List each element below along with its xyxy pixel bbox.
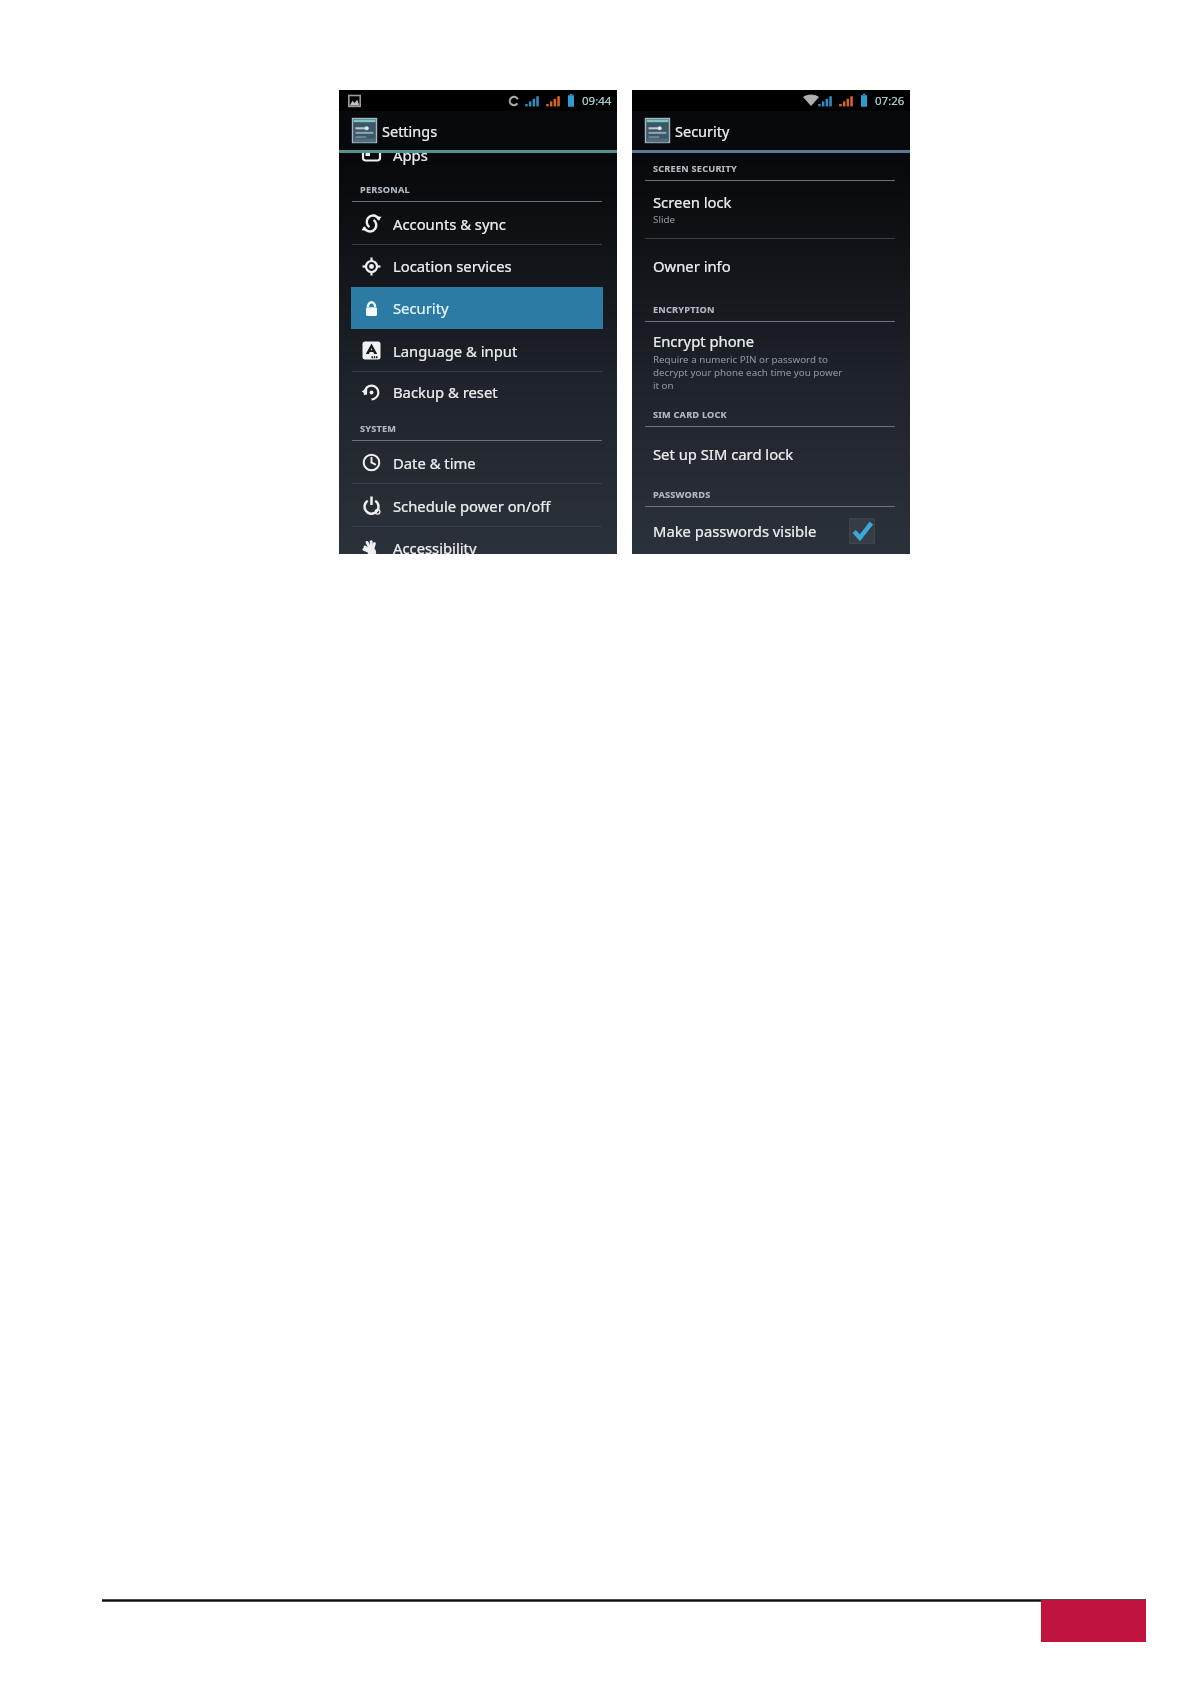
button[interactable]: Make passwords visible checkbox (849, 518, 875, 544)
staticText: Accessibility (393, 538, 477, 554)
staticText: SCREEN SECURITY (653, 162, 737, 175)
staticText: Apps (393, 145, 428, 165)
staticText: Require a numeric PIN or password to dec… (653, 353, 850, 392)
button[interactable]: Backup & reset (339, 371, 617, 413)
staticText: ENCRYPTION (653, 303, 715, 316)
staticText: Language & input (393, 341, 518, 361)
staticText: Date & time (393, 453, 476, 473)
button[interactable]: Up (644, 117, 671, 144)
staticText: Accounts & sync (393, 214, 506, 234)
staticText: Security (393, 298, 449, 318)
button[interactable]: Set up SIM card lock (632, 427, 910, 473)
button[interactable]: Make passwords visible (632, 507, 910, 554)
staticText: Backup & reset (393, 382, 498, 402)
staticText: Make passwords visible (653, 521, 849, 541)
staticText: Encrypt phone (653, 331, 755, 351)
staticText: PERSONAL (360, 183, 410, 196)
button[interactable]: Schedule power on/off (339, 484, 617, 527)
staticText: Schedule power on/off (393, 496, 551, 516)
staticText: SIM CARD LOCK (653, 408, 727, 421)
staticText: 09:44 (582, 93, 612, 109)
staticText: Security (675, 121, 730, 141)
button[interactable]: Up (351, 117, 378, 144)
button[interactable]: Owner info (632, 239, 910, 284)
button[interactable]: Screen lock (632, 181, 910, 239)
button[interactable]: Up (339, 111, 617, 150)
button[interactable]: Date & time (339, 441, 617, 484)
staticText: PASSWORDS (653, 488, 711, 501)
button[interactable]: Security (351, 287, 603, 329)
staticText: Slide (653, 213, 675, 226)
button[interactable]: Encrypt phone (632, 322, 910, 394)
button[interactable]: Location services (339, 245, 617, 287)
staticText: Set up SIM card lock (653, 444, 794, 464)
staticText: Settings (382, 121, 438, 141)
button[interactable]: Accessibility (339, 527, 617, 554)
staticText: SYSTEM (360, 422, 397, 435)
staticText: Screen lock (653, 192, 732, 212)
staticText: 07:26 (875, 93, 905, 109)
button[interactable]: Language & input (339, 329, 617, 372)
button[interactable]: Up (632, 111, 910, 150)
button[interactable]: Apps (339, 134, 617, 176)
staticText: Owner info (653, 256, 731, 276)
staticText: Location services (393, 256, 512, 276)
button[interactable]: Accounts & sync (339, 202, 617, 245)
